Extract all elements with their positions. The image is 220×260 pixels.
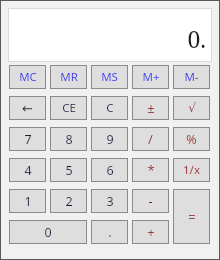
staticText: MR	[60, 69, 78, 85]
staticText: 7	[24, 131, 32, 148]
staticText: 8	[65, 131, 73, 148]
staticText: 9	[106, 131, 114, 148]
staticText: -	[148, 192, 153, 210]
staticText: .	[108, 224, 112, 241]
staticText: 2	[65, 193, 73, 210]
staticText: 1/x	[183, 162, 200, 178]
button[interactable]: M+	[132, 65, 169, 89]
staticText: C	[106, 100, 114, 116]
staticText: ←	[22, 101, 33, 116]
button[interactable]: 4	[9, 158, 46, 182]
button[interactable]: Equals	[173, 189, 210, 244]
staticText: 3	[106, 193, 114, 210]
staticText: 5	[65, 162, 73, 179]
button[interactable]: 1	[9, 189, 46, 213]
button[interactable]: Plus minus	[132, 96, 169, 120]
staticText: 6	[106, 162, 114, 179]
button[interactable]: Backspace	[9, 96, 46, 120]
button[interactable]: Reciprocal	[173, 158, 210, 182]
staticText: 1	[24, 193, 32, 210]
staticText: 0.	[187, 23, 206, 54]
button[interactable]: MR	[50, 65, 87, 89]
button[interactable]: CE	[50, 96, 87, 120]
staticText: +	[147, 223, 155, 241]
button[interactable]: Plus	[132, 220, 169, 244]
staticText: %	[186, 131, 197, 148]
button[interactable]: Percent	[173, 127, 210, 151]
staticText: MS	[101, 69, 118, 85]
button[interactable]: 3	[91, 189, 128, 213]
button[interactable]: Multiply	[132, 158, 169, 182]
staticText: =	[188, 208, 196, 226]
staticText: M-	[184, 69, 199, 85]
button[interactable]: Minus	[132, 189, 169, 213]
staticText: CE	[62, 100, 76, 116]
staticText: *	[147, 161, 155, 179]
staticText: /	[148, 130, 153, 148]
button[interactable]: MC	[9, 65, 46, 89]
staticText: √	[188, 101, 196, 115]
button[interactable]: 2	[50, 189, 87, 213]
button[interactable]: M-	[173, 65, 210, 89]
button[interactable]: 8	[50, 127, 87, 151]
button[interactable]: 6	[91, 158, 128, 182]
staticText: MC	[19, 69, 37, 85]
button[interactable]: 0	[9, 220, 87, 244]
staticText: ±	[147, 99, 155, 117]
button[interactable]: Square root	[173, 96, 210, 120]
staticText: 0	[44, 224, 52, 241]
button[interactable]: 7	[9, 127, 46, 151]
button[interactable]: C	[91, 96, 128, 120]
button[interactable]: 5	[50, 158, 87, 182]
staticText: 4	[24, 162, 32, 179]
button[interactable]: Decimal point	[91, 220, 128, 244]
button[interactable]: Divide	[132, 127, 169, 151]
staticText: M+	[142, 69, 160, 85]
button[interactable]: MS	[91, 65, 128, 89]
button[interactable]: 9	[91, 127, 128, 151]
